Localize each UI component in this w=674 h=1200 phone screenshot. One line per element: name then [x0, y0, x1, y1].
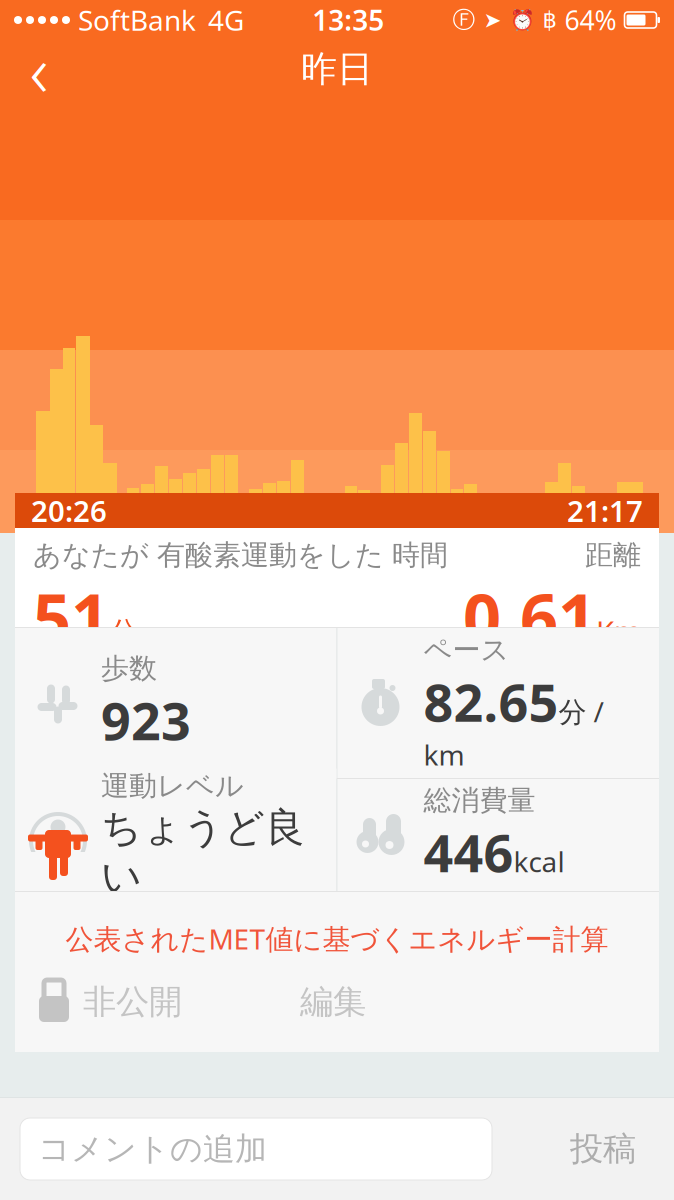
staticText: 446: [423, 818, 513, 887]
button[interactable]: 運動レベル: [15, 769, 336, 901]
staticText: ペース: [423, 633, 509, 667]
staticText: 非公開: [83, 981, 182, 1022]
staticText: 13:35: [312, 1, 384, 39]
button[interactable]: 編集: [292, 975, 374, 1028]
staticText: あなたが 有酸素運動をした 時間: [33, 538, 448, 572]
staticText: 82.65: [423, 667, 558, 736]
staticText: 20:26: [31, 491, 107, 530]
button[interactable]: 公表されたMET値に基づくエネルギー計算: [15, 910, 659, 967]
staticText: Ⓕ: [452, 6, 475, 34]
staticText: 昨日: [301, 47, 373, 91]
staticText: 21:17: [567, 491, 643, 530]
staticText: 51: [33, 572, 109, 661]
staticText: ちょうど良い: [101, 803, 305, 901]
staticText: ฿: [542, 7, 556, 33]
staticText: 距離: [585, 538, 641, 572]
button[interactable]: 総消費量: [337, 779, 659, 891]
button[interactable]: 非公開: [15, 974, 182, 1030]
staticText: 64%: [564, 2, 616, 38]
staticText: ➤: [483, 8, 501, 32]
staticText: 分 /: [558, 693, 603, 730]
staticText: 投稿: [570, 1128, 636, 1169]
button[interactable]: 投稿: [552, 1114, 654, 1183]
staticText: ⏰: [509, 9, 534, 31]
staticText: SoftBank: [78, 1, 196, 39]
staticText: 編集: [300, 981, 366, 1022]
staticText: 歩数: [101, 651, 157, 686]
staticText: 分: [109, 615, 138, 651]
staticText: 0.61: [463, 572, 596, 661]
staticText: 4G: [208, 1, 244, 39]
button[interactable]: 戻る: [8, 41, 70, 97]
staticText: 公表されたMET値に基づくエネルギー計算: [65, 920, 608, 957]
staticText: km: [423, 736, 464, 773]
staticText: 運動レベル: [101, 769, 244, 803]
staticText: kcal: [513, 843, 564, 880]
button[interactable]: コメントの追加: [20, 1118, 492, 1180]
staticText: 総消費量: [423, 783, 535, 818]
staticText: コメントの追加: [38, 1129, 267, 1169]
staticText: Km: [596, 612, 641, 651]
staticText: 923: [101, 686, 191, 755]
button[interactable]: 歩数: [15, 628, 336, 778]
staticText: ‹: [29, 21, 48, 117]
button[interactable]: ペース: [337, 628, 659, 778]
